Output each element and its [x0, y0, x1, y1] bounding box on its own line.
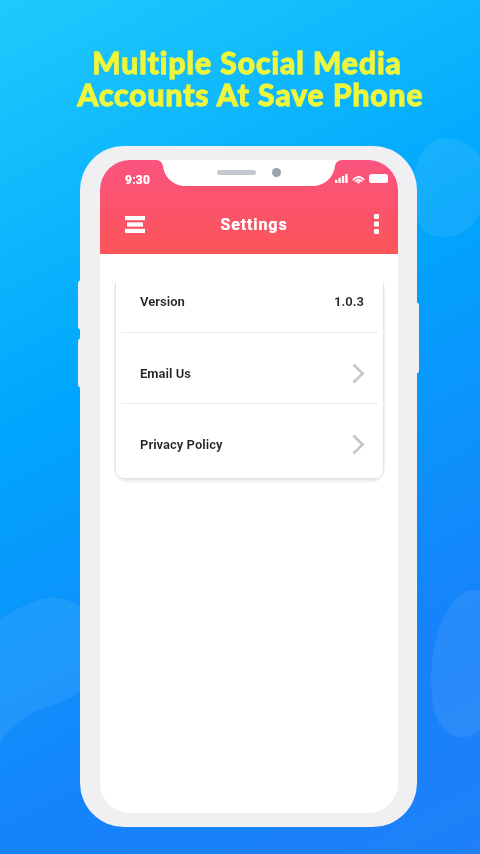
staticText: Privacy Policy: [140, 437, 223, 452]
staticText: Version: [140, 294, 185, 309]
button[interactable]: Email Us: [116, 338, 383, 408]
button[interactable]: Version: [116, 272, 383, 331]
staticText: 1.0.3: [334, 294, 364, 309]
button[interactable]: Privacy Policy: [116, 407, 383, 478]
staticText: Settings: [149, 215, 359, 234]
staticText: Multiple Social Media: [92, 44, 402, 80]
staticText: Accounts At Save Phone: [77, 76, 424, 112]
button[interactable]: Menu: [113, 202, 157, 246]
staticText: Email Us: [140, 366, 191, 381]
button[interactable]: More options: [354, 202, 398, 246]
staticText: 9:30: [125, 173, 151, 187]
